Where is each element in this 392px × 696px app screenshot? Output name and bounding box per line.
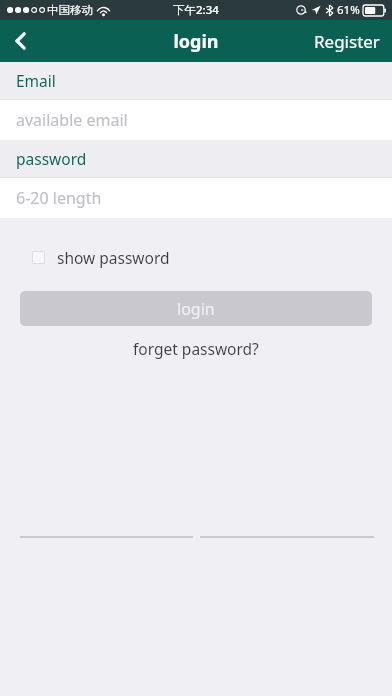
- staticText: Email: [16, 70, 56, 91]
- button[interactable]: login: [20, 291, 372, 326]
- button[interactable]: 6-20 length: [0, 178, 392, 218]
- staticText: 6-20 length: [16, 187, 102, 209]
- button[interactable]: show password: [0, 241, 392, 274]
- button[interactable]: Register: [302, 22, 392, 61]
- staticText: 下午2:34: [173, 2, 219, 18]
- staticText: password: [16, 148, 87, 169]
- staticText: Register: [314, 30, 380, 53]
- button[interactable]: Back: [0, 20, 42, 62]
- button[interactable]: forget password?: [123, 335, 269, 362]
- staticText: 中国移动: [47, 3, 93, 17]
- staticText: 61%: [337, 2, 360, 18]
- button[interactable]: available email: [0, 100, 392, 140]
- staticText: login: [173, 29, 219, 54]
- staticText: show password: [57, 247, 170, 268]
- staticText: available email: [16, 109, 128, 131]
- staticText: forget password?: [133, 338, 259, 359]
- staticText: login: [177, 298, 215, 320]
